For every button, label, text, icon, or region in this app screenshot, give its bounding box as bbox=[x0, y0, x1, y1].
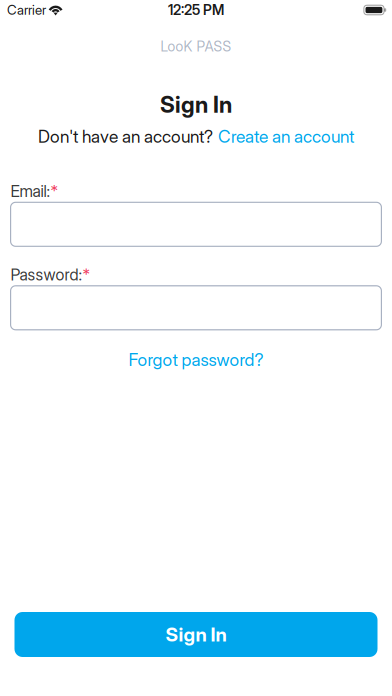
staticText: Carrier bbox=[7, 2, 46, 18]
staticText: Sign In bbox=[165, 623, 226, 646]
staticText: Password: bbox=[11, 265, 83, 284]
button[interactable]: Password: bbox=[11, 286, 381, 330]
button[interactable]: Email: bbox=[11, 202, 381, 246]
staticText: * bbox=[83, 265, 91, 284]
button[interactable]: Create an account bbox=[218, 128, 354, 144]
staticText: Email: bbox=[11, 182, 51, 201]
staticText: Don't have an account? bbox=[38, 126, 213, 147]
staticText: * bbox=[51, 182, 59, 201]
button[interactable]: Sign In bbox=[14, 612, 377, 657]
staticText: Create an account bbox=[218, 126, 354, 147]
staticText: Sign In bbox=[160, 91, 232, 118]
staticText: 12:25 PM bbox=[168, 1, 224, 18]
button[interactable]: Forgot password? bbox=[128, 351, 263, 368]
staticText: LooK PASS bbox=[160, 38, 231, 55]
staticText: Forgot password? bbox=[128, 349, 263, 370]
